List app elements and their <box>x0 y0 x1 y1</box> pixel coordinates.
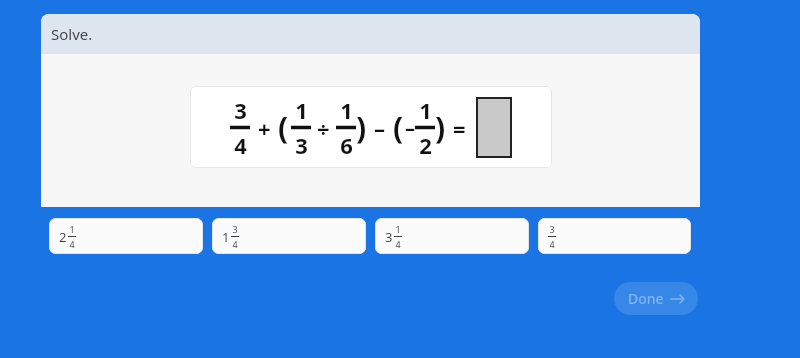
staticText: 1 <box>340 95 353 125</box>
staticText: 1 <box>69 223 75 235</box>
staticText: 3 <box>549 223 555 235</box>
button[interactable]: 3 <box>375 218 529 254</box>
staticText: + <box>258 113 271 143</box>
button[interactable]: 3 <box>538 218 691 254</box>
button[interactable]: Answer box <box>476 97 512 158</box>
staticText: 2 <box>419 130 432 160</box>
staticText: 1 <box>222 228 230 246</box>
staticText: 1 <box>295 95 308 125</box>
staticText: 2 <box>59 228 67 246</box>
button[interactable]: Done <box>614 282 698 315</box>
staticText: ) <box>435 107 446 148</box>
staticText: Solve. <box>51 24 93 44</box>
staticText: 4 <box>69 238 75 250</box>
staticText: 6 <box>340 130 353 160</box>
staticText: 4 <box>395 238 401 250</box>
staticText: 3 <box>385 228 393 246</box>
staticText: = <box>453 113 466 143</box>
staticText: 3 <box>232 223 238 235</box>
staticText: 4 <box>234 130 247 160</box>
staticText: Done <box>628 289 664 308</box>
staticText: – <box>405 114 415 141</box>
staticText: 3 <box>295 130 308 160</box>
staticText: 4 <box>549 238 555 250</box>
staticText: 1 <box>419 95 432 125</box>
staticText: ( <box>393 107 404 148</box>
button[interactable]: 1 <box>212 218 366 254</box>
staticText: ) <box>356 107 367 148</box>
button[interactable]: 2 <box>49 218 203 254</box>
staticText: 1 <box>395 223 401 235</box>
staticText: 4 <box>232 238 238 250</box>
staticText: – <box>374 113 386 143</box>
staticText: ( <box>278 107 289 148</box>
staticText: ÷ <box>317 113 330 143</box>
staticText: 3 <box>234 95 247 125</box>
